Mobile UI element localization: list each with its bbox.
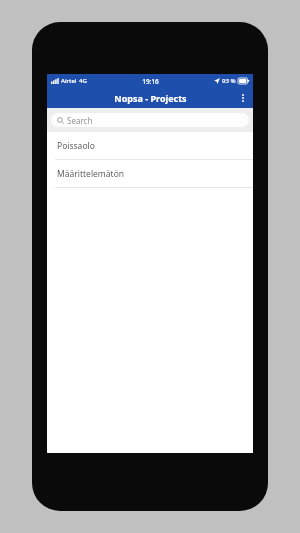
staticText: 93 % (222, 77, 236, 85)
button[interactable]: More options (233, 88, 253, 108)
staticText: Nopsa - Projects (114, 92, 187, 104)
staticText: Search (67, 115, 93, 126)
staticText: 19:16 (142, 77, 159, 86)
staticText: 4G (79, 77, 87, 85)
button[interactable]: Search (51, 113, 249, 127)
staticText: Airtel (61, 77, 77, 85)
staticText: Poissaolo (57, 140, 95, 152)
button[interactable]: Määrittelemätön (47, 160, 253, 187)
staticText: Määrittelemätön (57, 168, 125, 180)
button[interactable]: Poissaolo (47, 132, 253, 159)
